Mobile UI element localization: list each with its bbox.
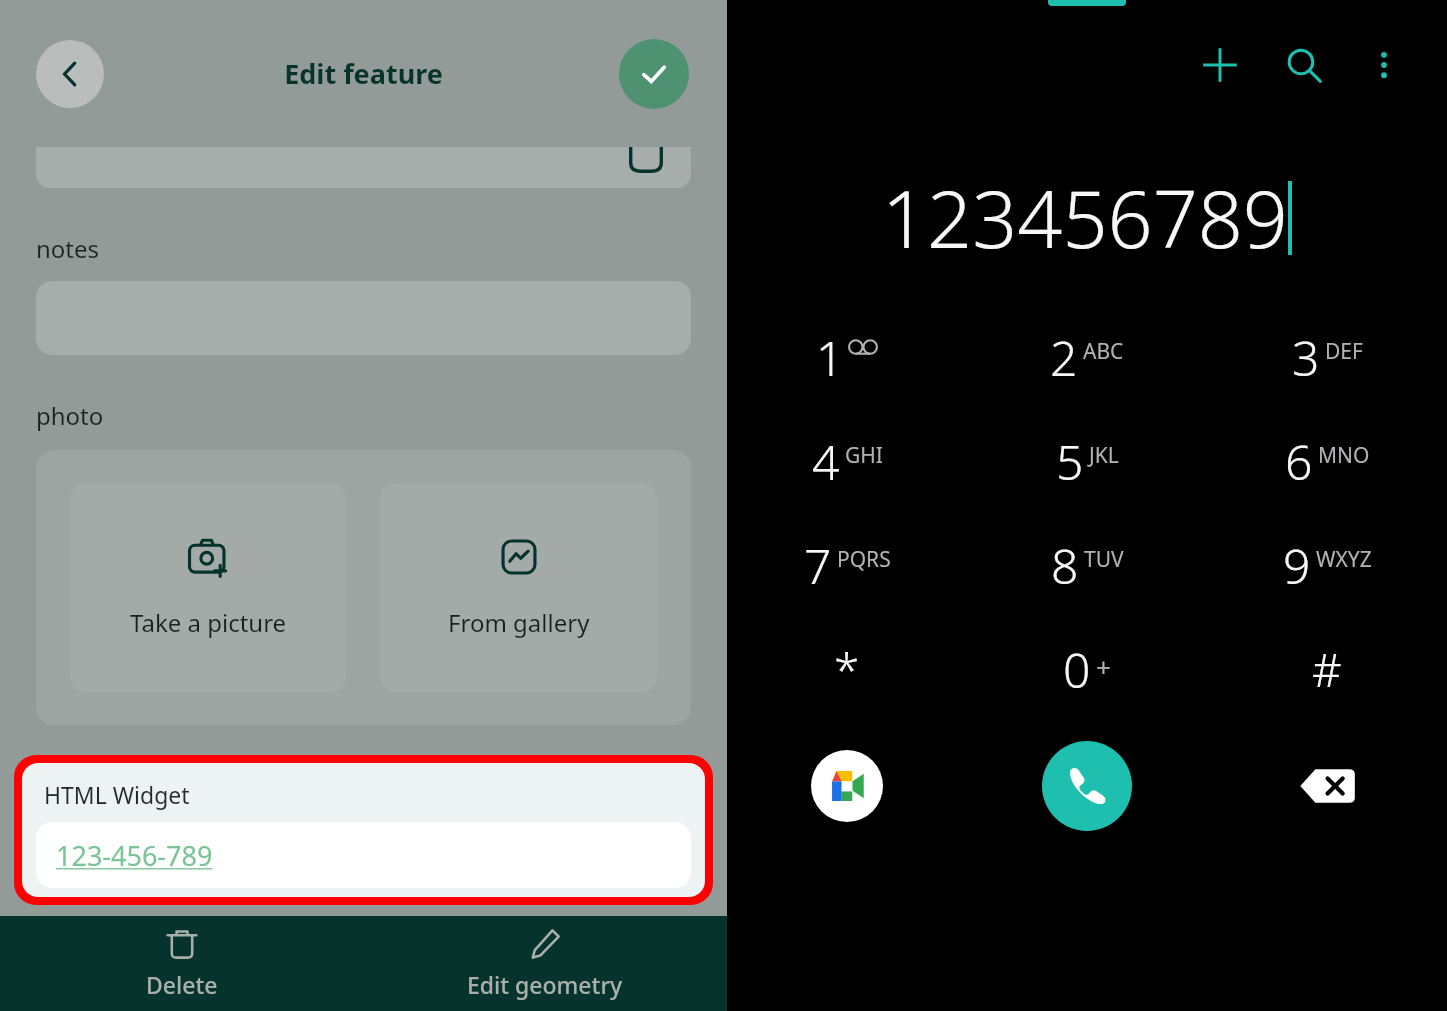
button[interactable]: Video call <box>811 750 883 822</box>
button[interactable]: 4 <box>727 409 967 513</box>
button[interactable]: 3 <box>1207 305 1447 409</box>
button[interactable]: From gallery <box>380 483 657 692</box>
staticText: Edit geometry <box>467 969 623 1000</box>
button[interactable]: 9 <box>1207 513 1447 617</box>
button[interactable]: # <box>1207 617 1447 721</box>
staticText: Edit feature <box>284 55 443 92</box>
button[interactable]: Edit geometry <box>363 916 727 1011</box>
button[interactable]: 1 <box>727 305 967 409</box>
staticText: ABC <box>1083 337 1124 366</box>
button[interactable]: 7 <box>727 513 967 617</box>
staticText: 5 <box>1056 429 1084 494</box>
button[interactable]: 8 <box>967 513 1207 617</box>
button[interactable]: 2 <box>967 305 1207 409</box>
button[interactable]: 123-456-789 <box>36 822 691 888</box>
staticText: 3 <box>1292 325 1320 390</box>
staticText: + <box>1096 649 1111 684</box>
staticText: 7 <box>804 533 832 598</box>
staticText: JKL <box>1089 441 1119 470</box>
staticText: Take a picture <box>130 606 287 639</box>
staticText: From gallery <box>448 606 590 639</box>
button[interactable]: Take a picture <box>70 483 346 692</box>
staticText: Delete <box>146 969 218 1000</box>
staticText: notes <box>36 232 100 265</box>
button[interactable]: Add contact <box>1191 36 1249 94</box>
staticText: * <box>834 638 860 701</box>
button[interactable]: Save <box>619 39 689 109</box>
button[interactable]: Search <box>1275 36 1333 94</box>
button[interactable]: 5 <box>967 409 1207 513</box>
staticText: MNO <box>1318 441 1370 470</box>
staticText: 1 <box>816 325 844 390</box>
staticText: 6 <box>1285 429 1313 494</box>
staticText: 2 <box>1050 325 1078 390</box>
staticText: 8 <box>1051 533 1079 598</box>
button[interactable]: More options <box>1355 36 1413 94</box>
button[interactable]: * <box>727 617 967 721</box>
staticText: 123456789 <box>882 164 1288 272</box>
staticText: # <box>1312 638 1342 701</box>
staticText: 9 <box>1283 533 1311 598</box>
staticText: PQRS <box>837 545 891 574</box>
staticText: 0 <box>1063 637 1091 702</box>
button[interactable]: Backspace <box>1297 762 1357 810</box>
button[interactable]: Delete <box>0 916 363 1011</box>
staticText: DEF <box>1325 337 1363 366</box>
button[interactable]: 6 <box>1207 409 1447 513</box>
staticText: WXYZ <box>1316 545 1372 574</box>
button[interactable]: Call <box>1042 741 1132 831</box>
staticText: TUV <box>1084 545 1124 574</box>
button[interactable]: Back <box>36 40 104 108</box>
staticText: HTML Widget <box>44 779 190 810</box>
staticText: GHI <box>845 441 883 470</box>
staticText: 123-456-789 <box>56 837 213 874</box>
staticText: photo <box>36 399 104 432</box>
button[interactable]: 0 <box>967 617 1207 721</box>
staticText: 4 <box>812 429 840 494</box>
